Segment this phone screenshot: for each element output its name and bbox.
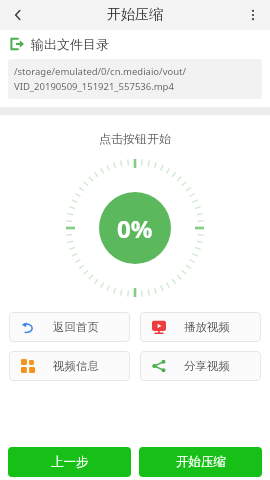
staticText: 开始压缩: [176, 454, 226, 470]
staticText: 播放视频: [184, 320, 230, 334]
button[interactable]: More options: [236, 0, 270, 30]
staticText: VID_20190509_151921_557536.mp4: [14, 80, 174, 93]
button[interactable]: 分享视频: [140, 351, 261, 381]
button[interactable]: 视频信息: [9, 351, 130, 381]
button[interactable]: 开始压缩: [139, 447, 262, 477]
staticText: 上一步: [51, 454, 89, 470]
staticText: /storage/emulated/0/cn.mediaio/vout/: [14, 65, 187, 78]
staticText: 视频信息: [53, 359, 99, 373]
button[interactable]: 上一步: [8, 447, 131, 477]
staticText: 0%: [117, 212, 153, 245]
staticText: 分享视频: [184, 359, 230, 373]
staticText: 开始压缩: [107, 6, 163, 24]
button[interactable]: 播放视频: [140, 312, 261, 342]
staticText: 输出文件目录: [31, 36, 109, 52]
staticText: 点击按钮开始: [0, 131, 270, 146]
button[interactable]: Back: [0, 0, 36, 30]
button[interactable]: 返回首页: [9, 312, 130, 342]
staticText: 返回首页: [53, 320, 99, 334]
